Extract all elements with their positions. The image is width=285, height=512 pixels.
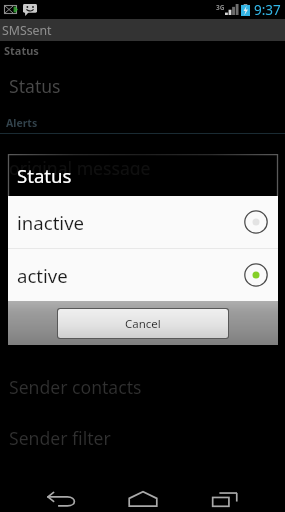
staticText: Cancel [125, 316, 161, 332]
button[interactable]: Back [40, 477, 84, 512]
button[interactable]: Recent apps [203, 477, 247, 512]
staticText: Status [4, 43, 39, 58]
staticText: inactive [17, 210, 85, 235]
staticText: 3G [216, 3, 225, 12]
button[interactable]: Cancel [58, 309, 228, 338]
button[interactable]: active [8, 249, 278, 301]
staticText: Forward to [9, 238, 100, 262]
staticText: Alerts [6, 116, 38, 130]
staticText: Status [9, 74, 61, 98]
button[interactable]: Home [121, 477, 165, 512]
staticText: SMSsent [2, 22, 52, 39]
staticText: active [17, 263, 68, 288]
staticText: 9:37 [254, 1, 281, 19]
staticText: Sender contacts [9, 375, 142, 399]
button[interactable]: inactive [8, 196, 278, 248]
staticText: original message [9, 156, 151, 175]
staticText: Status [17, 163, 72, 188]
staticText: Sender filter [9, 426, 111, 450]
